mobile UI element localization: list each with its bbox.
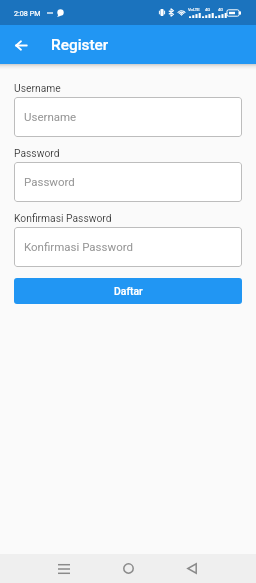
button[interactable]: Username — [14, 97, 242, 137]
staticText: Username — [24, 110, 77, 123]
staticText: VoLTE — [188, 7, 200, 12]
button[interactable]: Password — [14, 162, 242, 202]
staticText: 4G — [218, 7, 224, 12]
staticText: Password — [24, 175, 75, 188]
button[interactable]: Recent apps — [48, 554, 80, 583]
staticText: 2:08 PM — [14, 9, 41, 17]
button[interactable]: Back — [176, 554, 208, 583]
staticText: Username — [14, 82, 61, 94]
button[interactable]: Daftar — [14, 278, 242, 304]
button[interactable]: Home — [112, 554, 144, 583]
button[interactable]: Back — [7, 31, 35, 59]
staticText: Konfirmasi Password — [24, 240, 133, 253]
staticText: Konfirmasi Password — [14, 212, 112, 224]
staticText: Password — [14, 147, 60, 159]
button[interactable]: Konfirmasi Password — [14, 227, 242, 267]
staticText: Register — [51, 36, 109, 54]
staticText: 4G — [205, 7, 211, 12]
staticText: Daftar — [114, 285, 143, 297]
